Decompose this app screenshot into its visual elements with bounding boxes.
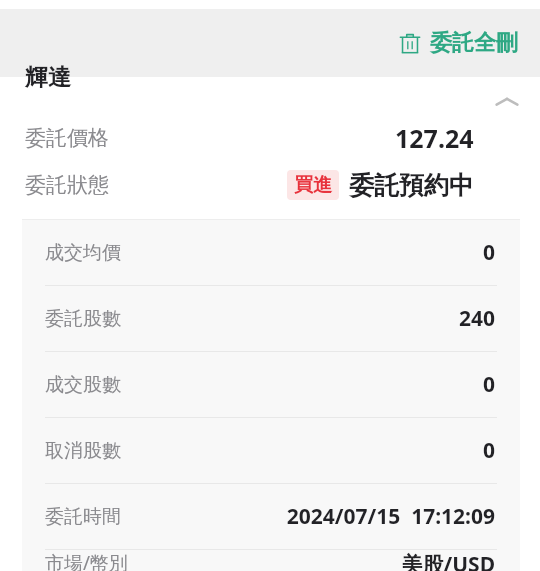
staticText: 委託狀態 xyxy=(25,172,109,198)
other: 委託全刪 xyxy=(399,32,421,54)
staticText: 美股/USD xyxy=(401,550,495,571)
button[interactable]: 市場/幣別 xyxy=(22,550,520,571)
staticText: 委託股數 xyxy=(45,307,121,331)
staticText: 成交股數 xyxy=(45,373,121,397)
staticText: 委託全刪 xyxy=(430,29,518,57)
staticText: 127.24 xyxy=(395,121,474,155)
button[interactable]: 成交均價 xyxy=(22,220,520,286)
button[interactable]: 委託狀態 xyxy=(25,161,474,209)
other: 收合 xyxy=(494,94,520,110)
button[interactable]: 成交股數 xyxy=(22,352,520,418)
staticText: 輝達 xyxy=(25,63,71,92)
staticText: 0 xyxy=(482,238,495,267)
staticText: 市場/幣別 xyxy=(45,550,129,571)
staticText: 委託時間 xyxy=(45,505,121,529)
staticText: 委託預約中 xyxy=(349,170,474,201)
button[interactable]: 委託時間 xyxy=(22,484,520,550)
staticText: 0 xyxy=(482,370,495,399)
button[interactable]: 委託價格 xyxy=(25,115,474,161)
staticText: 買進 xyxy=(294,173,332,197)
button[interactable]: 委託股數 xyxy=(22,286,520,352)
button[interactable]: 輝達 xyxy=(0,77,540,115)
staticText: 成交均價 xyxy=(45,241,121,265)
button[interactable]: 取消股數 xyxy=(22,418,520,484)
staticText: 240 xyxy=(458,304,495,333)
staticText: 2024/07/15 17:12:09 xyxy=(286,502,495,531)
button[interactable]: 委託全刪 xyxy=(395,23,522,63)
staticText: 0 xyxy=(482,436,495,465)
staticText: 取消股數 xyxy=(45,439,121,463)
staticText: 委託價格 xyxy=(25,125,109,151)
